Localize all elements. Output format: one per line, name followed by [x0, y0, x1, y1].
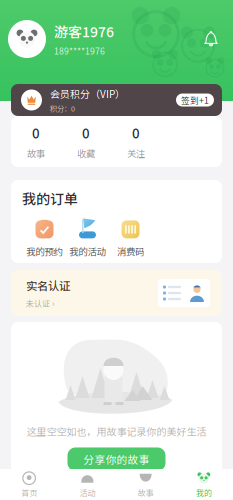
- staticText: 签到+1: [181, 94, 209, 106]
- staticText: 我的活动: [69, 244, 105, 258]
- button[interactable]: 分享你的故事: [67, 447, 165, 471]
- button[interactable]: 故事: [116, 469, 175, 500]
- button[interactable]: Notifications: [198, 26, 224, 52]
- staticText: 会员积分（VIP）: [50, 86, 125, 101]
- staticText: 189****1976: [54, 44, 105, 57]
- staticText: 活动: [79, 487, 95, 498]
- staticText: 分享你的故事: [83, 451, 149, 467]
- button[interactable]: 我的活动: [66, 219, 109, 258]
- button[interactable]: 我的: [175, 469, 233, 500]
- button[interactable]: 首页: [0, 469, 58, 500]
- staticText: 故事: [138, 487, 154, 498]
- staticText: 消费码: [117, 244, 144, 258]
- staticText: 0: [82, 123, 90, 142]
- button[interactable]: 会员积分（VIP）: [11, 84, 222, 116]
- button[interactable]: 0: [111, 123, 161, 160]
- staticText: 首页: [21, 487, 37, 498]
- button[interactable]: 0: [61, 123, 111, 160]
- staticText: 我的订单: [22, 188, 78, 208]
- button[interactable]: 0: [11, 123, 61, 160]
- button[interactable]: 消费码: [109, 219, 152, 258]
- staticText: 关注: [127, 146, 145, 160]
- button[interactable]: 活动: [58, 469, 116, 500]
- button[interactable]: 实名认证: [11, 270, 222, 316]
- staticText: 实名认证: [26, 277, 70, 293]
- staticText: 我的预约: [26, 244, 62, 258]
- staticText: 0: [32, 123, 40, 142]
- staticText: 这里空空如也，用故事记录你的美好生活: [26, 424, 206, 438]
- staticText: 0: [132, 123, 140, 142]
- staticText: 我的: [196, 487, 212, 498]
- staticText: 积分：0: [50, 103, 75, 113]
- staticText: 故事: [27, 146, 45, 160]
- button[interactable]: 我的预约: [23, 219, 66, 258]
- staticText: 收藏: [77, 146, 95, 160]
- staticText: 未认证 ›: [26, 297, 54, 309]
- staticText: 游客1976: [54, 21, 114, 41]
